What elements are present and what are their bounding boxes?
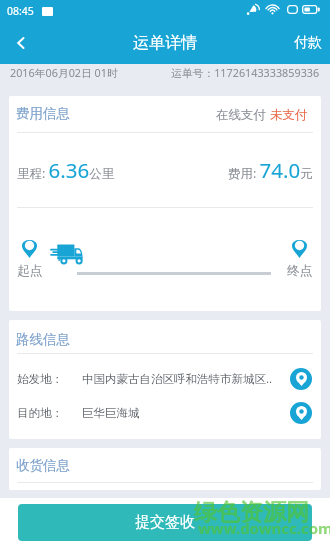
staticText: 2016年06月02日 01时 — [10, 65, 118, 80]
staticText: 路线信息 — [16, 331, 70, 348]
staticText: 绿色资源网 — [194, 498, 309, 527]
staticText: 起点 — [17, 263, 43, 279]
staticText: 费用: 74.0元 — [228, 156, 313, 184]
staticText: 运单详情 — [133, 33, 197, 53]
button[interactable]: Show on map — [290, 368, 312, 390]
staticText: www.downcc.com — [198, 518, 330, 538]
staticText: 始发地： — [17, 372, 63, 386]
button[interactable]: 始发地： — [9, 363, 321, 395]
staticText: 未支付 — [270, 107, 308, 123]
button[interactable]: 提交签收 — [18, 504, 312, 541]
staticText: 目的地： — [17, 406, 63, 420]
staticText: 收货信息 — [16, 457, 70, 474]
button[interactable]: Back — [0, 22, 42, 64]
staticText: 中国内蒙古自治区呼和浩特市新城区.. — [82, 371, 273, 387]
button[interactable]: 目的地： — [9, 397, 321, 429]
button[interactable]: Show on map — [290, 402, 312, 424]
staticText: 费用信息 — [16, 105, 70, 122]
staticText: 在线支付 — [216, 107, 266, 123]
staticText: 终点 — [287, 263, 313, 279]
staticText: 里程: 6.36公里 — [17, 156, 115, 184]
button[interactable]: 付款 — [286, 22, 330, 64]
staticText: 提交签收 — [135, 513, 195, 532]
staticText: 08:45 — [7, 4, 34, 18]
staticText: 付款 — [294, 34, 322, 52]
staticText: 运单号：11726143333859336 — [171, 65, 320, 80]
staticText: 巨华巨海城 — [82, 406, 140, 420]
